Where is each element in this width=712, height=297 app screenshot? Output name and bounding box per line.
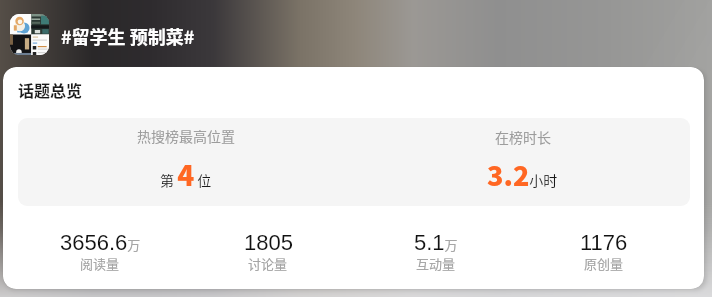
staticText: 3.2小时 [487, 155, 558, 194]
staticText: 在榜时长 [495, 127, 551, 147]
staticText: 3656.6万 [60, 230, 141, 255]
staticText: 1805 [244, 230, 293, 255]
button[interactable]: 1176 [520, 230, 688, 274]
staticText: 热搜榜最高位置 [137, 126, 235, 146]
staticText: 阅读量 [80, 254, 120, 273]
staticText: 话题总览 [18, 78, 83, 101]
staticText: 第 4 位 [160, 154, 212, 195]
staticText: 原创量 [584, 254, 624, 273]
staticText: 讨论量 [248, 254, 288, 273]
staticText: #留学生 预制菜# [61, 23, 195, 49]
staticText: 互动量 [416, 254, 456, 273]
staticText: 1176 [580, 230, 628, 255]
button[interactable]: 3656.6万 [16, 230, 184, 274]
button[interactable]: Topic avatar [10, 14, 49, 55]
button[interactable]: 1805 [184, 230, 352, 274]
button[interactable]: 5.1万 [352, 230, 520, 274]
staticText: 5.1万 [414, 230, 458, 255]
